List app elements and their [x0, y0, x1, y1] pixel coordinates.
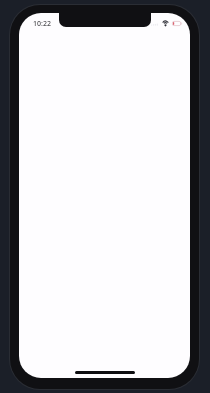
button[interactable]: 10:22 — [33, 19, 51, 29]
button[interactable]: Status: signal, Wi-Fi, battery low — [151, 21, 182, 26]
other: Cellular signal — [151, 21, 158, 26]
button[interactable]: Home — [75, 371, 135, 374]
other: Wi-Fi connected — [162, 21, 169, 26]
other: Battery low — [172, 21, 182, 26]
